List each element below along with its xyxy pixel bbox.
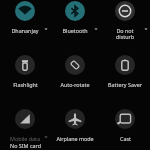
staticText: Airplane mode [56, 135, 94, 142]
staticText: Cast [120, 135, 131, 142]
button[interactable]: Flashlight [0, 55, 50, 88]
button[interactable]: Airplane mode [50, 109, 100, 142]
button[interactable]: Cast [100, 109, 150, 142]
staticText: Battery Saver [108, 81, 142, 88]
button[interactable]: Do not disturb [100, 1, 150, 40]
button[interactable]: Mobile data [0, 109, 50, 149]
button[interactable]: Wi-Fi [0, 1, 50, 34]
staticText: Bluetooth [62, 27, 88, 34]
button[interactable]: Battery Saver [100, 55, 150, 88]
button[interactable]: Bluetooth [50, 1, 100, 34]
staticText: No SIM card [10, 142, 41, 149]
button[interactable]: Auto-rotate [50, 55, 100, 88]
staticText: Auto-rotate [60, 81, 90, 88]
staticText: Dhananjay [11, 27, 39, 34]
staticText: Flashlight [13, 81, 38, 88]
staticText: Mobile data [10, 135, 40, 142]
staticText: Do not disturb [109, 27, 141, 40]
